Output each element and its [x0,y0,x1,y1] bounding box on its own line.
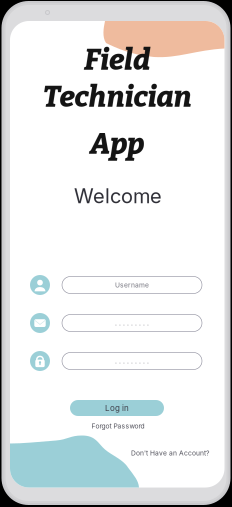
staticText: . . . . . . . . . [115,357,149,365]
button[interactable]: Log in [70,400,164,416]
staticText: . . . . . . . . . [115,319,149,327]
button[interactable]: Don't Have an Account? [131,448,209,457]
button[interactable]: Username [62,276,202,293]
staticText: Username [115,281,149,289]
staticText: Field [84,42,150,78]
staticText: Technician [42,79,191,115]
button[interactable]: Password [62,352,202,369]
staticText: Don't Have an Account? [131,449,209,457]
button[interactable]: Email [62,314,202,331]
staticText: Welcome [74,184,162,208]
staticText: Forgot Password [91,422,144,430]
staticText: Log in [105,403,129,413]
button[interactable]: Forgot Password [91,421,144,430]
staticText: App [90,126,144,162]
